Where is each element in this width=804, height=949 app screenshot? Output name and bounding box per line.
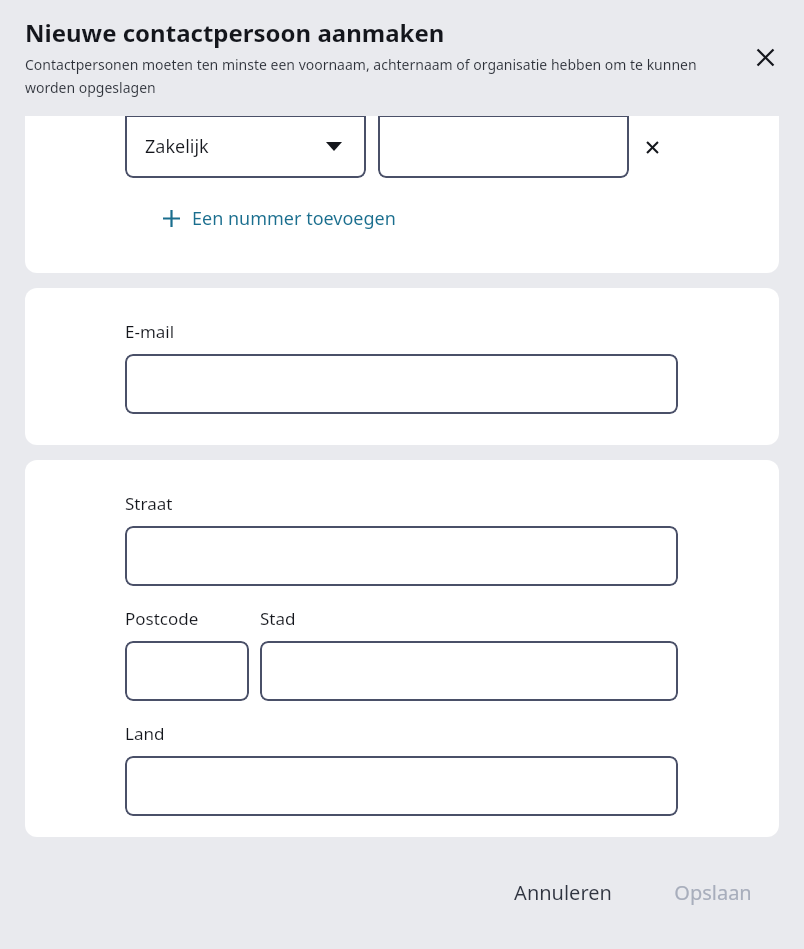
button[interactable]: Sluiten xyxy=(744,36,786,78)
button[interactable] xyxy=(125,526,678,586)
button[interactable]: Opslaan xyxy=(658,869,768,916)
staticText: Opslaan xyxy=(674,879,752,906)
button[interactable] xyxy=(260,641,678,701)
staticText: Stad xyxy=(260,607,296,630)
staticText: Een nummer toevoegen xyxy=(192,206,396,231)
button[interactable]: Annuleren xyxy=(498,869,628,916)
button[interactable] xyxy=(378,116,629,178)
staticText: E-mail xyxy=(125,320,175,343)
button[interactable] xyxy=(125,756,678,816)
button[interactable]: Nummer verwijderen xyxy=(629,124,675,170)
staticText: Land xyxy=(125,722,165,745)
button[interactable] xyxy=(125,641,249,701)
staticText: Zakelijk xyxy=(145,134,209,159)
staticText: Straat xyxy=(125,492,173,515)
button[interactable]: Zakelijk xyxy=(125,116,366,178)
button[interactable]: Een nummer toevoegen xyxy=(163,206,396,231)
staticText: Annuleren xyxy=(514,879,612,906)
staticText: Postcode xyxy=(125,607,260,630)
staticText: Contactpersonen moeten ten minste een vo… xyxy=(25,55,714,97)
staticText: Nieuwe contactpersoon aanmaken xyxy=(25,16,445,49)
button[interactable] xyxy=(125,354,678,414)
